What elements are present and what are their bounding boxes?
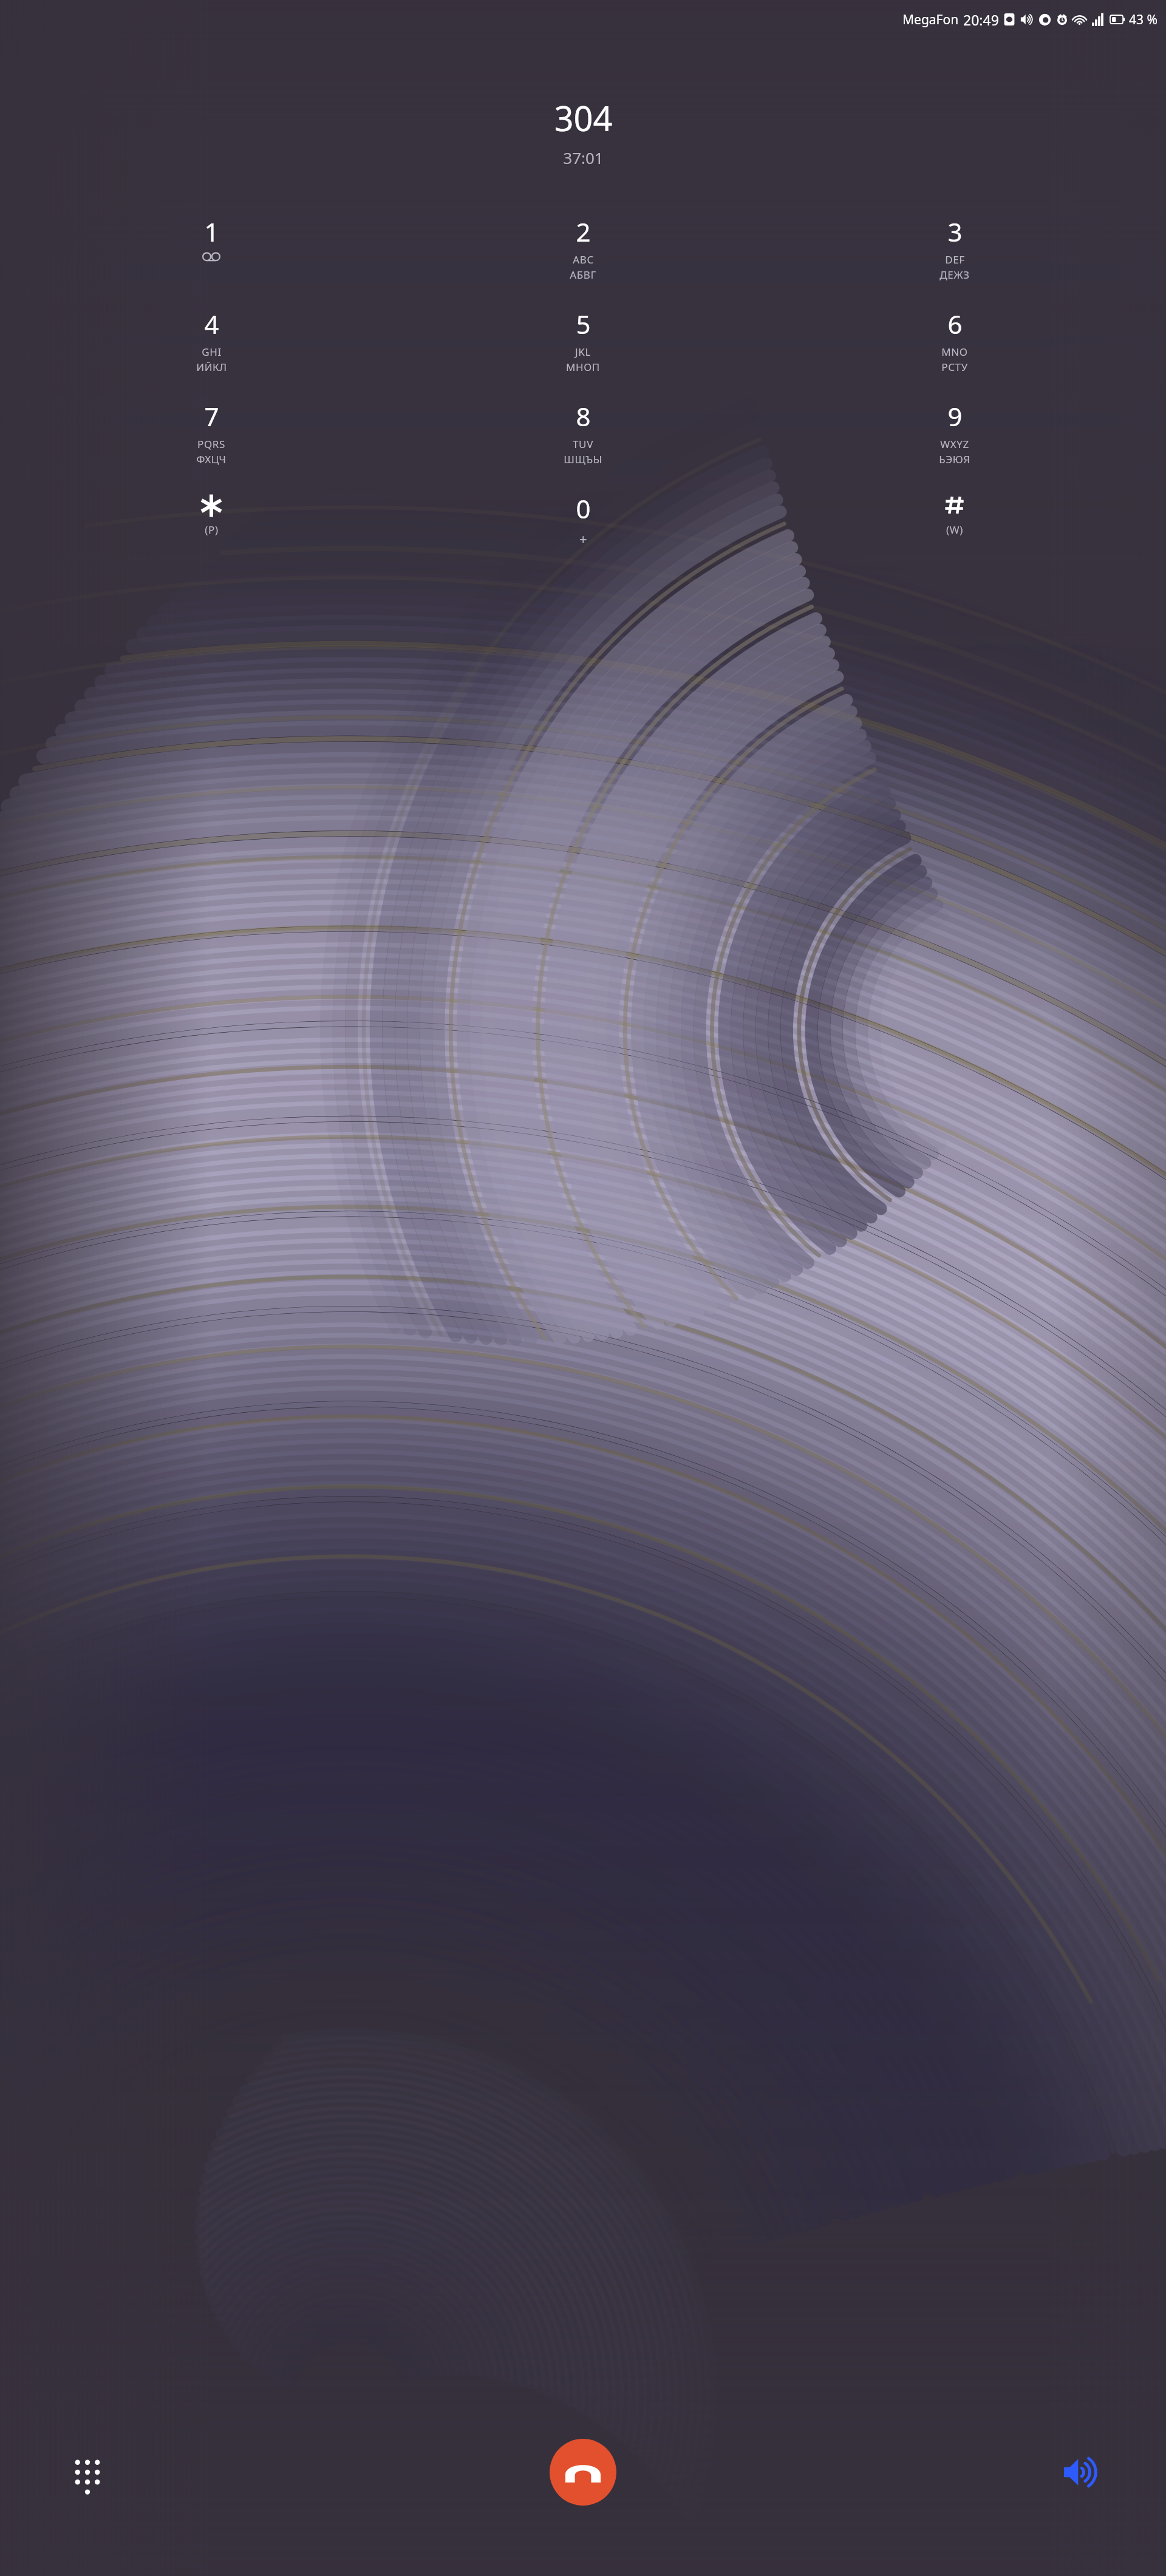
staticText: 1 bbox=[204, 214, 219, 249]
staticText: ЬЭЮЯ bbox=[939, 452, 970, 466]
button[interactable]: Keypad bbox=[66, 2450, 109, 2494]
staticText: 3 bbox=[947, 214, 963, 249]
staticText: + bbox=[579, 529, 587, 548]
staticText: ABC bbox=[573, 253, 594, 267]
button[interactable]: 4 bbox=[166, 304, 257, 383]
staticText: WXYZ bbox=[940, 437, 969, 451]
staticText: 2 bbox=[576, 214, 591, 249]
button[interactable]: 6 bbox=[909, 304, 1000, 383]
staticText: ИЙКЛ bbox=[196, 360, 227, 374]
button[interactable]: 2 bbox=[537, 212, 629, 291]
button[interactable]: (W) bbox=[909, 489, 1000, 568]
button[interactable]: End call bbox=[550, 2439, 616, 2506]
staticText: MNO bbox=[941, 345, 968, 359]
staticText: 9 bbox=[947, 399, 963, 433]
staticText: РСТУ bbox=[941, 360, 968, 374]
staticText: JKL bbox=[575, 345, 591, 359]
staticText: АБВГ bbox=[570, 268, 596, 282]
staticText: GHI bbox=[202, 345, 222, 359]
button[interactable]: 9 bbox=[909, 396, 1000, 475]
button[interactable]: 5 bbox=[537, 304, 629, 383]
staticText: 7 bbox=[204, 399, 219, 433]
button[interactable]: 3 bbox=[909, 212, 1000, 291]
button[interactable]: 8 bbox=[537, 396, 629, 475]
staticText: DEF bbox=[945, 253, 965, 267]
staticText: ДЕЖЗ bbox=[939, 268, 970, 282]
staticText: 43 % bbox=[1129, 11, 1157, 29]
staticText: ФХЦЧ bbox=[196, 452, 227, 466]
staticText: TUV bbox=[573, 437, 593, 451]
staticText: 304 bbox=[554, 95, 613, 141]
button[interactable]: (P) bbox=[166, 489, 257, 568]
staticText: PQRS bbox=[197, 437, 225, 451]
staticText: МНОП bbox=[566, 360, 600, 374]
staticText: 6 bbox=[947, 307, 963, 341]
staticText: 8 bbox=[576, 399, 591, 433]
staticText: (W) bbox=[946, 523, 963, 537]
staticText: (P) bbox=[205, 523, 219, 537]
staticText: 20:49 bbox=[963, 10, 999, 29]
staticText: 5 bbox=[576, 307, 591, 341]
staticText: 37:01 bbox=[563, 147, 604, 168]
staticText: MegaFon bbox=[902, 11, 959, 29]
button[interactable]: 7 bbox=[166, 396, 257, 475]
button[interactable]: 1 bbox=[166, 212, 257, 291]
button[interactable]: 0 bbox=[537, 489, 629, 568]
staticText: ШЩЪЫ bbox=[564, 452, 602, 466]
button[interactable]: Speaker bbox=[1057, 2448, 1105, 2496]
staticText: 0 bbox=[576, 491, 591, 526]
staticText: 4 bbox=[204, 307, 219, 341]
